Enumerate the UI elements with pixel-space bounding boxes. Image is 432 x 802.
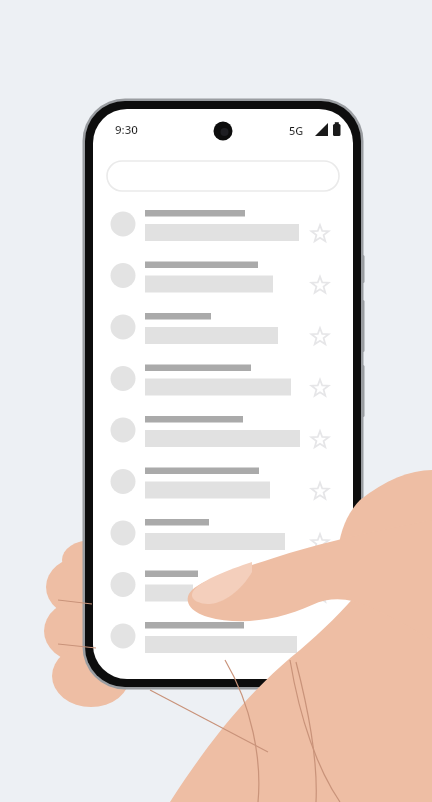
button[interactable]: Phone held in hand showing a list app — [0, 0, 432, 802]
